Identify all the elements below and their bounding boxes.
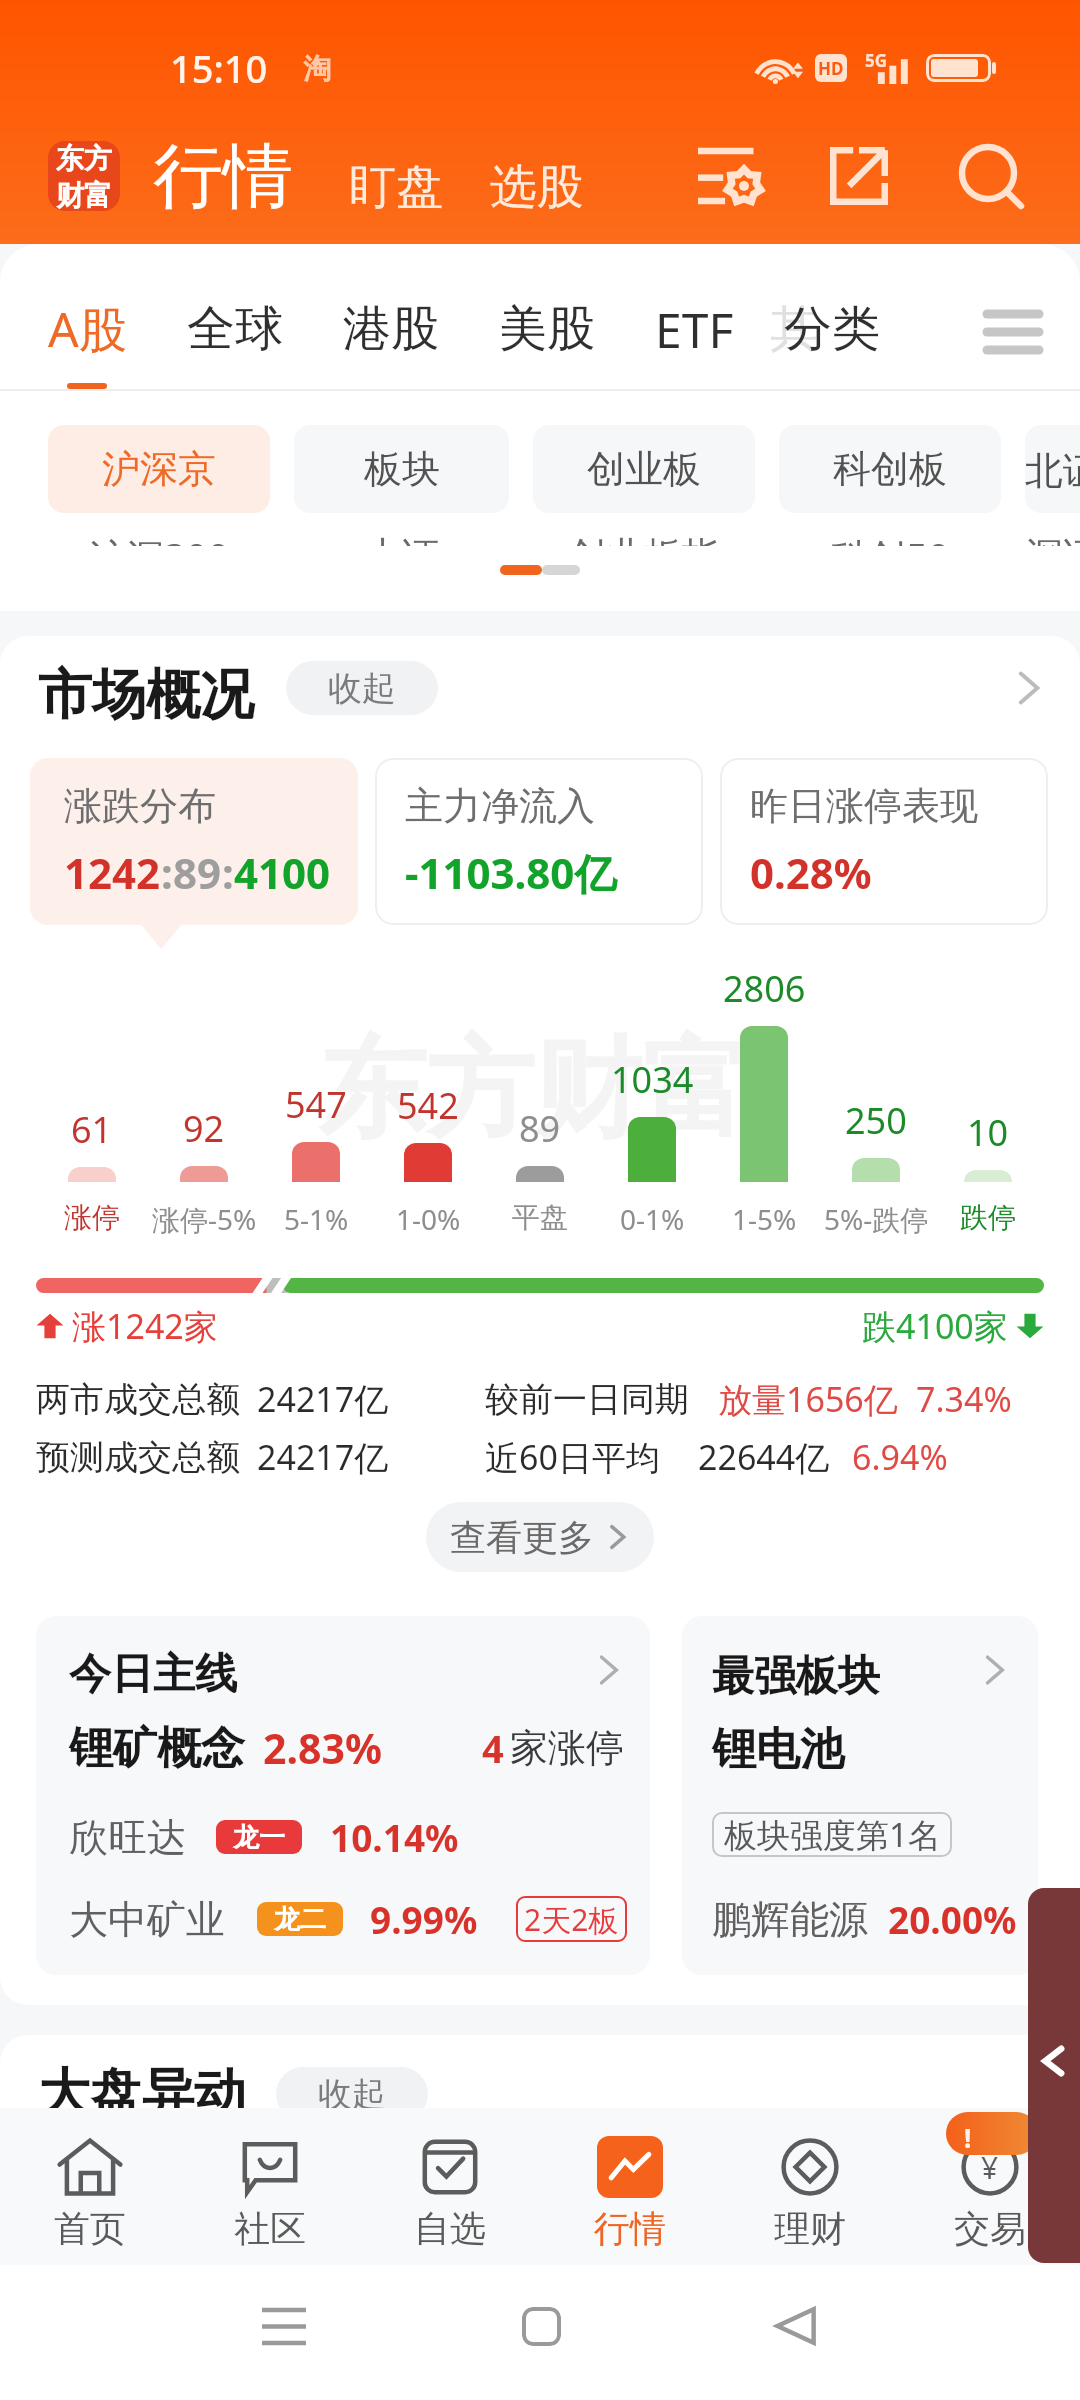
button[interactable]: A股 [48,296,127,362]
staticText: ! [964,2120,972,2155]
staticText: 10.14% [330,1812,459,1862]
staticText: 两市成交总额 [36,1378,240,1421]
staticText: 分类 [784,299,880,359]
button[interactable]: All categories [974,296,1052,362]
button[interactable]: 主力净流入 [375,758,703,925]
button[interactable]: 全球 [187,299,283,359]
staticText: 5-1% [284,1200,349,1238]
staticText: 1242 [64,844,161,901]
button[interactable]: Open in new window [807,124,911,228]
button[interactable]: Back [750,2280,842,2372]
button[interactable]: East Money home [48,141,120,211]
staticText: 20.00% [888,1894,1017,1944]
staticText: 全球 [187,299,283,359]
staticText: 5G [865,49,888,72]
button[interactable]: 理财 [720,2108,900,2265]
staticText: 预测成交总额 [36,1436,240,1479]
button[interactable]: 创业板 [533,425,755,513]
button[interactable]: Open market overview [998,661,1058,715]
staticText: 涨1242家 [72,1303,218,1349]
button[interactable]: 港股 [343,299,439,359]
staticText: 收起 [318,2073,386,2116]
staticText: 科创50 [830,530,950,546]
button[interactable]: 板块 [294,425,509,513]
button[interactable]: ETF [655,297,734,362]
staticText: 龙一 [233,1821,285,1854]
staticText: 社区 [234,2206,306,2251]
button[interactable]: 查看更多 [426,1502,654,1572]
button[interactable]: 科创板 [779,425,1001,513]
staticText: 板块强度第1名 [724,1812,941,1857]
staticText: 542 [397,1081,459,1130]
staticText: 昨日涨停表现 [750,782,978,830]
staticText: 1-5% [732,1200,797,1238]
staticText: 9.99% [370,1894,478,1944]
staticText: 0-1% [620,1200,685,1238]
button[interactable]: Home [495,2280,587,2372]
button[interactable]: 收起 [286,661,438,715]
button[interactable]: 社区 [180,2108,360,2265]
button[interactable]: 沪深京 [48,425,270,513]
button[interactable]: 北证50 [1025,425,1080,513]
staticText: 行情 [594,2206,666,2251]
button[interactable]: 美股 [499,299,595,359]
staticText: 创业板指 [568,532,720,546]
button[interactable]: 自选 [360,2108,540,2265]
staticText: 理财 [774,2206,846,2251]
staticText: 0.28% [750,844,872,901]
staticText: 东方 [56,141,112,176]
button[interactable]: Watchlist settings [677,124,781,228]
button[interactable]: 行情 [540,2108,720,2265]
staticText: 交易 [954,2206,1026,2251]
staticText: 平盘 [512,1200,568,1235]
staticText: 科创板 [833,445,947,493]
staticText: 锂矿概念 [69,1721,245,1776]
button[interactable]: Notification [946,2112,1038,2155]
staticText: 61 [71,1105,113,1154]
button[interactable]: Search [938,124,1042,228]
staticText: 收起 [328,667,396,710]
staticText: 涨停-5% [152,1200,257,1238]
button[interactable]: 最强板块 [682,1616,1038,1975]
button[interactable]: 今日主线 [36,1616,650,1975]
staticText: 547 [285,1080,347,1129]
staticText: 10 [967,1108,1009,1157]
staticText: 鹏辉能源 [712,1895,868,1944]
staticText: 自选 [414,2206,486,2251]
button[interactable]: Recent apps [238,2280,330,2372]
staticText: 大中矿业 [69,1895,225,1944]
staticText: 15:10 [170,42,268,94]
staticText: 较前一日同期 [485,1378,689,1421]
staticText: 龙二 [274,1903,326,1936]
staticText: : [222,844,234,901]
staticText: 22644亿 [698,1434,830,1480]
staticText: 查看更多 [450,1515,594,1560]
staticText: 92 [183,1104,225,1153]
staticText: 北证50 [1025,443,1080,495]
staticText: HD [818,57,844,80]
staticText: 1-0% [396,1200,461,1238]
button[interactable]: 涨跌分布 [30,758,358,925]
staticText: 市场概况 [38,661,254,715]
staticText: 6.94% [852,1434,948,1480]
button[interactable]: 首页 [0,2108,180,2265]
staticText: 东方财富 [318,1022,750,1158]
staticText: 近60日平均 [485,1434,660,1480]
staticText: 89 [519,1104,561,1153]
staticText: 财富 [56,178,112,211]
staticText: 涨跌分布 [64,782,216,830]
staticText: 大盘异动 [38,2061,246,2127]
button[interactable]: 收起 [276,2067,428,2121]
staticText: 1034 [611,1055,694,1104]
button[interactable]: ¥ [900,2108,1080,2265]
staticText: 涨停 [64,1200,120,1235]
button[interactable]: Expand side drawer [1028,1888,1080,2263]
staticText: 89 [173,844,222,901]
staticText: -1103.80亿 [405,844,617,901]
button[interactable]: 昨日涨停表现 [720,758,1048,925]
button[interactable]: 分类 [784,299,880,359]
staticText: 沪深京 [102,445,216,493]
staticText: 选股 [490,158,584,217]
staticText: 首页 [54,2206,126,2251]
staticText: 今日主线 [69,1648,237,1701]
